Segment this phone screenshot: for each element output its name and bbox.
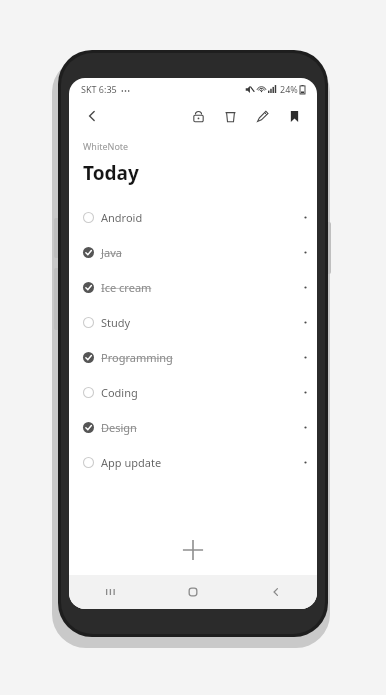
button[interactable]: Bookmark — [281, 103, 307, 129]
staticText: Android — [101, 210, 143, 225]
button[interactable]: Recents — [69, 575, 151, 609]
staticText: Ice cream — [101, 280, 152, 295]
button[interactable]: Edit — [249, 103, 275, 129]
button[interactable]: Java — [69, 235, 317, 270]
button[interactable]: Programming — [69, 340, 317, 375]
staticText: Programming — [101, 350, 173, 365]
button[interactable]: Android — [69, 200, 317, 235]
button[interactable]: Home — [151, 575, 234, 609]
staticText: Study — [101, 315, 131, 330]
button[interactable]: Lock — [185, 103, 211, 129]
staticText: Today — [83, 160, 139, 186]
button[interactable]: Delete — [217, 103, 243, 129]
button[interactable]: Back — [79, 103, 105, 129]
button[interactable]: Coding — [69, 375, 317, 410]
button[interactable]: Back — [234, 575, 317, 609]
button[interactable]: App update — [69, 445, 317, 480]
staticText: WhiteNote — [83, 140, 129, 152]
staticText: App update — [101, 455, 162, 470]
staticText: Design — [101, 420, 137, 435]
other: Add task — [181, 538, 205, 562]
button[interactable]: Study — [69, 305, 317, 340]
staticText: SKT 6:35 — [81, 83, 117, 95]
staticText: Coding — [101, 385, 138, 400]
staticText: 24% — [280, 83, 298, 95]
button[interactable]: Ice cream — [69, 270, 317, 305]
staticText: Java — [101, 245, 122, 260]
button[interactable]: Add task — [69, 525, 317, 575]
button[interactable]: Design — [69, 410, 317, 445]
